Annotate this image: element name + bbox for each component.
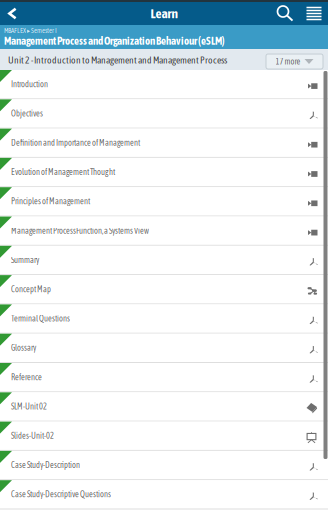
button[interactable]: Management ProcessFunction, a Systems Vi… <box>0 216 328 245</box>
button[interactable]: Menu <box>300 2 328 25</box>
staticText: Management ProcessFunction, a Systems Vi… <box>11 226 149 235</box>
staticText: Summary <box>11 255 39 265</box>
staticText: Introduction <box>11 79 48 89</box>
button[interactable]: Evolution of Management Thought <box>0 158 328 186</box>
staticText: Glossary <box>11 343 36 353</box>
button[interactable]: Search <box>265 2 300 25</box>
staticText: Management Process and Organization Beha… <box>4 35 225 47</box>
button[interactable]: Definition and Importance of Management <box>0 129 328 157</box>
button[interactable]: Concept Map <box>0 275 328 303</box>
button[interactable]: Terminal Questions <box>0 304 328 333</box>
button[interactable]: 17 more <box>266 54 323 69</box>
staticText: Slides-Unit-02 <box>11 431 54 440</box>
staticText: Unit 2 - Introduction to Management and … <box>8 54 227 65</box>
staticText: MBAFLEX ▸ Semester I <box>4 27 57 35</box>
button[interactable]: Introduction <box>0 70 328 98</box>
staticText: Case Study-Description <box>11 460 80 470</box>
staticText: Evolution of Management Thought <box>11 167 115 177</box>
staticText: Case Study-Descriptive Questions <box>11 490 111 499</box>
staticText: Objectives <box>11 109 43 118</box>
button[interactable]: Case Study-Description <box>0 451 328 479</box>
button[interactable]: Glossary <box>0 334 328 362</box>
staticText: SLM-Unit 02 <box>11 402 47 411</box>
button[interactable]: Slides-Unit-02 <box>0 422 328 450</box>
button[interactable]: SLM-Unit 02 <box>0 392 328 421</box>
button[interactable]: Case Study-Descriptive Questions <box>0 480 328 508</box>
staticText: Learn <box>150 6 177 21</box>
staticText: Principles of Management <box>11 197 90 206</box>
button[interactable]: Principles of Management <box>0 187 328 215</box>
staticText: Terminal Questions <box>11 314 70 323</box>
button[interactable]: Back <box>0 2 25 25</box>
staticText: Concept Map <box>11 284 51 294</box>
button[interactable]: Reference <box>0 363 328 391</box>
button[interactable]: Summary <box>0 246 328 274</box>
staticText: 17 more <box>275 57 300 66</box>
button[interactable]: Objectives <box>0 99 328 128</box>
staticText: Reference <box>11 372 42 382</box>
staticText: Definition and Importance of Management <box>11 138 140 147</box>
